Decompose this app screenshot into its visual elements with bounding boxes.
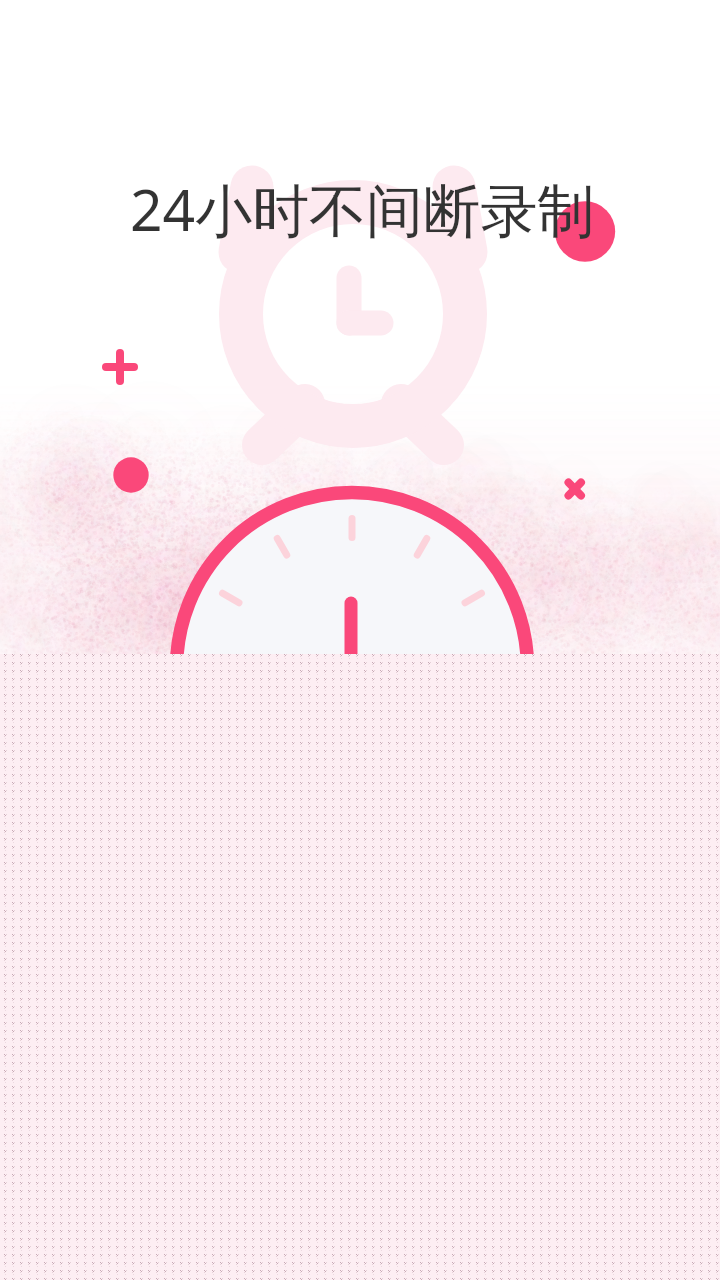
staticText: 24小时不间断录制	[130, 170, 595, 248]
button[interactable]: 24小时不间断录制 介绍页	[0, 0, 720, 1280]
